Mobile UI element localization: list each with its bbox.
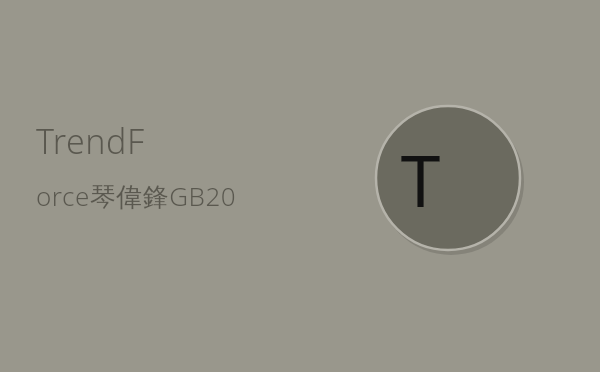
button[interactable]: TrendForce avatar <box>374 104 522 252</box>
staticText: T <box>400 130 441 228</box>
button[interactable]: TrendF <box>36 118 237 214</box>
staticText: orce琴偉鋒GB20 <box>36 178 237 214</box>
staticText: TrendF <box>36 118 145 164</box>
